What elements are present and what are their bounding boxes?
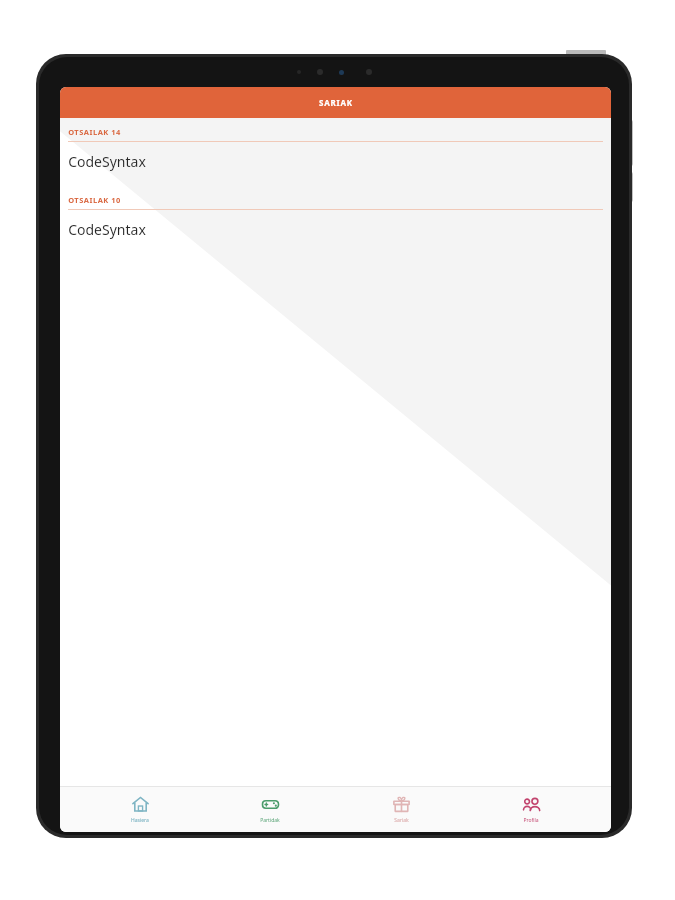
staticText: Partidak <box>260 817 280 824</box>
button[interactable]: OTSAILAK 14 <box>60 127 611 181</box>
button[interactable]: Profila <box>481 786 581 832</box>
button[interactable]: OTSAILAK 10 <box>60 195 611 249</box>
button[interactable]: Partidak <box>220 786 320 832</box>
staticText: Hasiera <box>131 817 149 824</box>
button[interactable]: Sariak <box>351 786 451 832</box>
staticText: OTSAILAK 14 <box>68 127 121 137</box>
button[interactable]: Hasiera <box>90 786 190 832</box>
staticText: CodeSyntax <box>68 220 146 239</box>
staticText: Sariak <box>394 817 409 824</box>
staticText: CodeSyntax <box>68 152 146 171</box>
staticText: OTSAILAK 10 <box>68 195 121 205</box>
staticText: Profila <box>523 817 539 824</box>
staticText: SARIAK <box>319 97 353 108</box>
